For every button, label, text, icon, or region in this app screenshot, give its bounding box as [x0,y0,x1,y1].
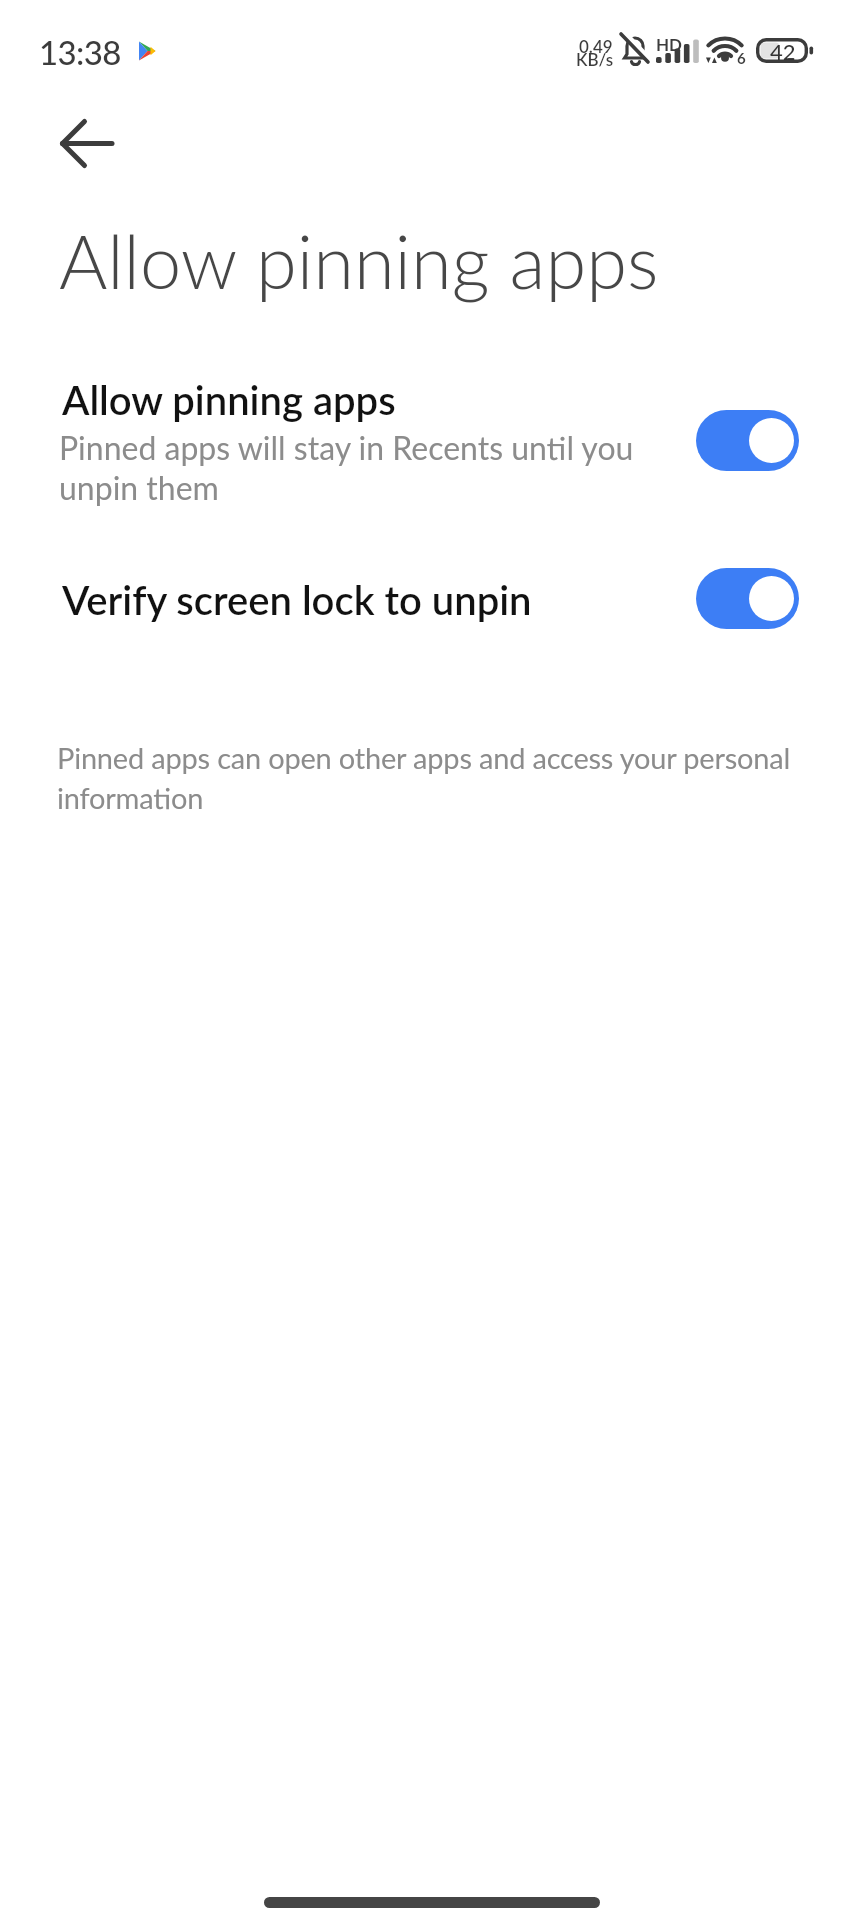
staticText: Verify screen lock to unpin [62,576,532,624]
staticText: 0.49 [579,36,613,56]
button[interactable]: Verify screen lock to unpin [0,548,864,650]
button[interactable] [48,114,124,172]
staticText: 13:38 [39,32,121,72]
button[interactable] [696,568,799,629]
staticText: HD [656,34,683,54]
staticText: Allow pinning apps [62,376,396,424]
staticText: Pinned apps can open other apps and acce… [57,740,791,775]
staticText: information [57,780,204,815]
staticText: 6 [737,49,746,67]
staticText: Allow pinning apps [59,216,659,305]
button[interactable] [696,410,799,471]
button[interactable]: Allow pinning apps [0,356,864,528]
staticText: KB/s [576,49,614,69]
staticText: 42 [770,38,796,64]
staticText: Pinned apps will stay in Recents until y… [59,428,634,466]
staticText: unpin them [59,468,219,506]
